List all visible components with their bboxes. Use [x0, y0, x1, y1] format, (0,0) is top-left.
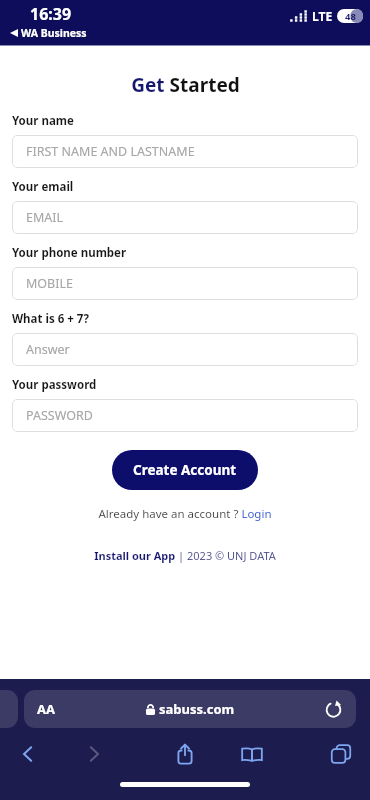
staticText: 16:39 — [30, 3, 72, 25]
staticText: LTE — [312, 8, 333, 24]
staticText: WA Business — [21, 26, 87, 40]
button[interactable]: Create Account — [112, 450, 258, 490]
staticText: MOBILE — [26, 275, 73, 292]
staticText: Get Started — [131, 72, 240, 98]
staticText: Answer — [26, 341, 70, 358]
button[interactable]: PASSWORD — [12, 399, 358, 432]
button[interactable]: MOBILE — [12, 267, 358, 300]
other: Share — [174, 743, 196, 765]
button[interactable]: Install our App | 2023 © UNJ DATA — [94, 548, 276, 563]
other: Tabs — [330, 743, 352, 765]
button[interactable]: AA — [24, 690, 356, 728]
button[interactable]: Tabs — [330, 743, 352, 765]
button[interactable]: Share — [174, 743, 196, 765]
button[interactable]: Back — [18, 744, 38, 764]
staticText: PASSWORD — [26, 407, 93, 424]
staticText: Create Account — [133, 461, 237, 479]
other: Back — [18, 744, 38, 764]
button[interactable]: Already have an account ? Login — [98, 506, 272, 522]
other: Reload — [324, 700, 343, 719]
staticText: sabuss.com — [159, 700, 235, 718]
button[interactable]: EMAIL — [12, 201, 358, 234]
button[interactable]: Previous tab — [0, 690, 18, 728]
staticText: Install our App | 2023 © UNJ DATA — [94, 548, 276, 563]
staticText: What is 6 + 7? — [12, 311, 89, 327]
button[interactable]: Bookmarks — [240, 742, 264, 766]
staticText: Already have an account ? Login — [98, 506, 272, 522]
button[interactable]: Answer — [12, 333, 358, 366]
staticText: 48 — [345, 10, 356, 23]
staticText: Your password — [12, 377, 97, 393]
staticText: Your email — [12, 179, 74, 195]
staticText: Your name — [12, 113, 74, 129]
button[interactable]: Forward — [84, 744, 104, 764]
other: Forward — [84, 744, 104, 764]
staticText: FIRST NAME AND LASTNAME — [26, 143, 195, 160]
staticText: EMAIL — [26, 209, 64, 226]
staticText: AA — [37, 700, 55, 718]
staticText: Your phone number — [12, 245, 127, 261]
button[interactable]: FIRST NAME AND LASTNAME — [12, 135, 358, 168]
other: Bookmarks — [240, 742, 264, 766]
